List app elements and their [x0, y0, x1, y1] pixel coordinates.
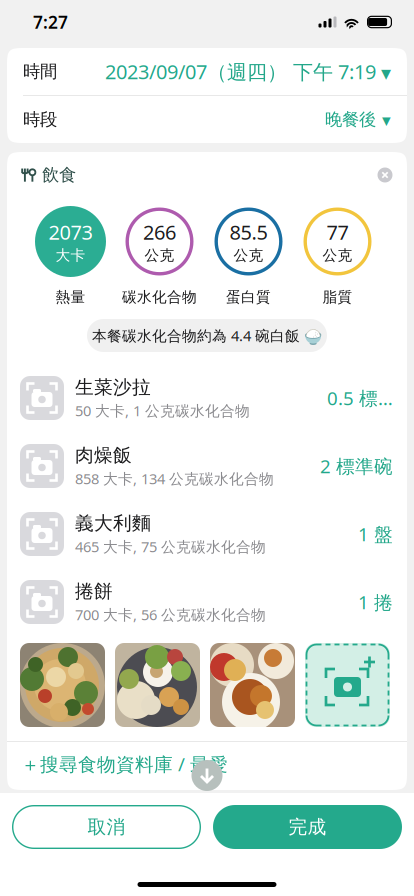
staticText: 生菜沙拉 [75, 376, 151, 399]
staticText: 時間 [23, 61, 57, 82]
staticText: 捲餅 [75, 580, 113, 603]
button[interactable]: 生菜沙拉 [7, 364, 407, 432]
staticText: 2073 [48, 219, 92, 245]
staticText: 1 盤 [358, 522, 393, 546]
staticText: 碳水化合物 [122, 288, 197, 306]
staticText: 2 標準碗 [320, 454, 393, 478]
button[interactable]: 肉燥飯 [7, 432, 407, 500]
staticText: 50 大卡, 1 公克碳水化合物 [75, 401, 250, 420]
staticText: 7:27 [33, 10, 68, 33]
staticText: 公克 [144, 246, 174, 264]
button[interactable]: 完成 [213, 805, 402, 849]
button[interactable]: 義大利麵 [7, 500, 407, 568]
staticText: 大卡 [55, 246, 85, 264]
staticText: 1 捲 [358, 590, 393, 614]
staticText: 晚餐後 ▾ [325, 109, 391, 130]
staticText: 肉燥飯 [75, 444, 132, 467]
staticText: 飲食 [42, 164, 76, 186]
staticText: 脂質 [322, 288, 352, 306]
staticText: 2023/09/07（週四） 下午 7:19 ▾ [105, 58, 391, 85]
staticText: 本餐碳水化合物約為 4.4 碗白飯 🍚 [92, 326, 322, 345]
staticText: 公克 [322, 246, 352, 264]
button[interactable]: 時間 [7, 48, 407, 95]
staticText: 85.5 [229, 219, 267, 245]
staticText: 465 大卡, 75 公克碳水化合物 [75, 537, 266, 556]
staticText: 時段 [23, 109, 57, 130]
staticText: 蛋白質 [226, 288, 271, 306]
button[interactable]: 時段 [7, 96, 407, 143]
button[interactable]: 捲餅 [7, 568, 407, 636]
button[interactable]: Close [370, 160, 400, 190]
staticText: 取消 [87, 815, 125, 838]
staticText: 熱量 [55, 288, 85, 306]
staticText: 完成 [288, 815, 326, 838]
staticText: 77 [326, 219, 348, 245]
button[interactable]: ＋搜尋食物資料庫 / 最愛 [7, 742, 407, 786]
staticText: ＋搜尋食物資料庫 / 最愛 [21, 752, 228, 776]
staticText: 858 大卡, 134 公克碳水化合物 [75, 469, 274, 488]
staticText: 700 大卡, 56 公克碳水化合物 [75, 605, 266, 624]
button[interactable]: Add photo [305, 643, 390, 727]
staticText: 266 [143, 219, 176, 245]
staticText: 公克 [233, 246, 263, 264]
staticText: 0.5 標… [327, 386, 393, 410]
button[interactable]: 取消 [12, 805, 201, 849]
staticText: 義大利麵 [75, 512, 151, 535]
